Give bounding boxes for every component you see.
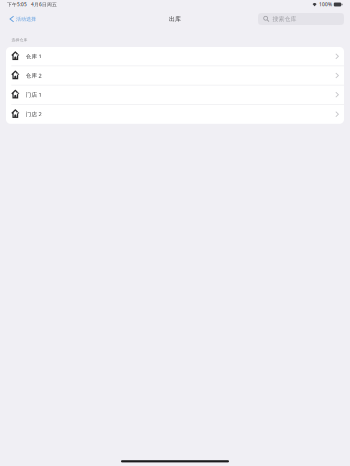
staticText: 门店 2 bbox=[26, 110, 42, 118]
staticText: 搜索仓库 bbox=[272, 15, 296, 23]
button[interactable]: 门店 2 bbox=[6, 105, 344, 124]
button[interactable]: 活动选择 bbox=[1, 12, 41, 26]
button[interactable]: 仓库 2 bbox=[6, 66, 344, 85]
staticText: 活动选择 bbox=[16, 16, 36, 22]
staticText: 门店 1 bbox=[26, 91, 42, 98]
staticText: 出库 bbox=[169, 15, 181, 23]
staticText: 仓库 2 bbox=[26, 72, 42, 79]
staticText: 4月6日周五 bbox=[31, 1, 57, 8]
staticText: 下午5:05 bbox=[7, 1, 27, 8]
staticText: 选择仓库 bbox=[11, 38, 27, 42]
staticText: 仓库 1 bbox=[26, 52, 42, 60]
button[interactable]: 仓库 1 bbox=[6, 47, 344, 66]
staticText: 100% bbox=[319, 1, 332, 8]
button[interactable]: 搜索仓库 bbox=[258, 13, 344, 25]
button[interactable]: 门店 1 bbox=[6, 85, 344, 105]
